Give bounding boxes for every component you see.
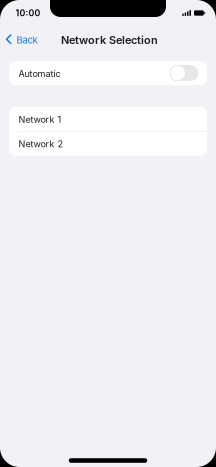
staticText: 10:00 — [16, 8, 41, 18]
button[interactable]: Network 1 — [9, 107, 207, 131]
staticText: Back — [16, 34, 37, 46]
button[interactable]: Back — [0, 30, 43, 50]
staticText: Network 2 — [18, 139, 63, 150]
button[interactable]: Network 2 — [9, 132, 207, 156]
button[interactable]: Automatic — [9, 61, 207, 85]
staticText: Network Selection — [61, 33, 158, 47]
staticText: Network 1 — [18, 114, 61, 125]
staticText: Automatic — [18, 68, 60, 79]
